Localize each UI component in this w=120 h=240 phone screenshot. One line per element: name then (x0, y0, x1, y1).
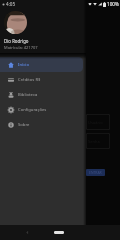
other: Back (25, 230, 30, 235)
button[interactable]: Créditos R$ (0, 72, 83, 87)
button[interactable]: Biblioteca (0, 87, 83, 102)
staticText: Créditos R$ (18, 77, 41, 83)
staticText: Matrícula: 421707 (4, 45, 38, 50)
other: Home (54, 231, 64, 234)
staticText: Início (18, 62, 29, 68)
button[interactable]: Usuário (86, 114, 110, 130)
staticText: Biblioteca (18, 92, 38, 98)
button[interactable]: Sobre (0, 117, 83, 132)
button[interactable]: Senha (86, 133, 110, 149)
staticText: ENTRAR (89, 170, 102, 175)
staticText: Dio Rodrigo (4, 38, 29, 44)
button[interactable]: Início (0, 57, 83, 72)
staticText: 4:05 (6, 1, 16, 7)
button[interactable]: ENTRAR (86, 169, 105, 176)
button[interactable]: Configurações (0, 102, 83, 117)
staticText: Sobre (18, 122, 30, 128)
staticText: 100% (107, 1, 119, 7)
staticText: Configurações (18, 107, 47, 113)
